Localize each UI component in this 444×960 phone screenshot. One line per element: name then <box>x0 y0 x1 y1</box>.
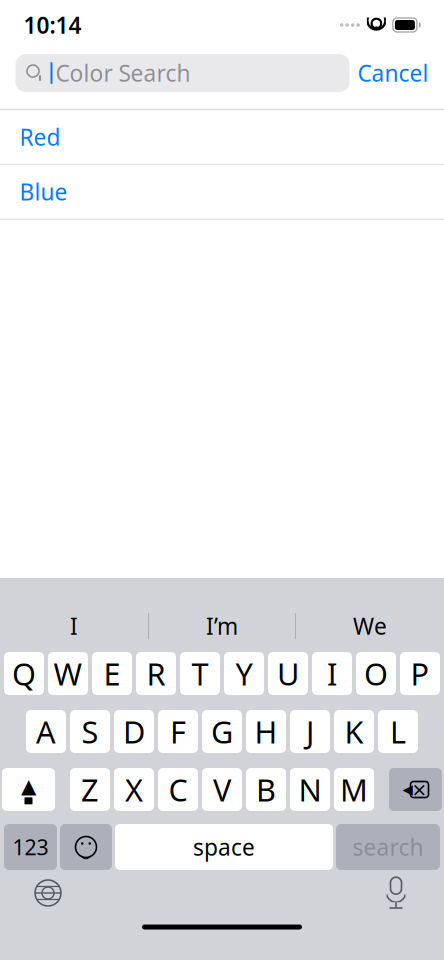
button[interactable]: P <box>400 652 440 695</box>
staticText: A <box>36 711 56 752</box>
button[interactable]: X <box>114 768 154 811</box>
button[interactable]: U <box>268 652 308 695</box>
staticText: C <box>168 769 187 810</box>
staticText: W <box>53 653 82 694</box>
staticText: B <box>256 769 276 810</box>
button[interactable]: F <box>158 710 198 753</box>
staticText: 10:14 <box>23 10 81 40</box>
button[interactable]: N <box>290 768 330 811</box>
staticText: U <box>277 653 299 694</box>
button[interactable]: Delete <box>389 768 442 811</box>
staticText: space <box>193 832 255 862</box>
button[interactable]: Next keyboard <box>26 871 70 915</box>
staticText: ▲ <box>21 775 36 797</box>
button[interactable]: M <box>334 768 374 811</box>
button[interactable]: I <box>312 652 352 695</box>
staticText: K <box>344 711 363 752</box>
button[interactable]: I <box>0 604 148 648</box>
staticText: G <box>211 711 233 752</box>
button[interactable]: G <box>202 710 242 753</box>
button[interactable]: A <box>26 710 66 753</box>
staticText: L <box>390 711 406 752</box>
staticText: M <box>340 769 368 810</box>
button[interactable]: K <box>334 710 374 753</box>
button[interactable]: O <box>356 652 396 695</box>
staticText: F <box>170 711 186 752</box>
button[interactable]: I’m <box>149 604 295 648</box>
staticText: Y <box>235 653 252 694</box>
button[interactable]: Dictate <box>374 871 418 915</box>
staticText: T <box>191 653 208 694</box>
staticText: Q <box>12 653 36 694</box>
button[interactable]: R <box>136 652 176 695</box>
button[interactable]: W <box>48 652 88 695</box>
button[interactable]: Shift <box>2 768 55 811</box>
button[interactable]: Emoji <box>60 824 112 870</box>
button[interactable]: C <box>158 768 198 811</box>
button[interactable]: Blue <box>0 165 444 219</box>
button[interactable]: Red <box>0 110 444 165</box>
staticText: Cancel <box>357 58 428 88</box>
button[interactable]: Q <box>4 652 44 695</box>
staticText: I <box>70 611 78 641</box>
button[interactable]: E <box>92 652 132 695</box>
staticText: We <box>353 611 387 641</box>
button[interactable]: T <box>180 652 220 695</box>
staticText: search <box>352 832 423 862</box>
button[interactable]: We <box>296 604 444 648</box>
staticText: ◀ <box>402 782 412 797</box>
button[interactable]: J <box>290 710 330 753</box>
staticText: O <box>364 653 388 694</box>
staticText: Z <box>81 769 99 810</box>
staticText: I’m <box>206 611 238 641</box>
staticText: V <box>213 769 231 810</box>
staticText: X <box>125 769 143 810</box>
button[interactable]: search <box>336 824 440 870</box>
staticText: D <box>123 711 145 752</box>
button[interactable]: Y <box>224 652 264 695</box>
button[interactable]: Z <box>70 768 110 811</box>
staticText: I <box>327 653 337 694</box>
staticText: ⨯ <box>411 779 427 800</box>
button[interactable]: H <box>246 710 286 753</box>
staticText: Blue <box>19 177 67 207</box>
button[interactable]: space <box>115 824 333 870</box>
staticText: N <box>298 769 321 810</box>
staticText: Red <box>19 122 60 152</box>
button[interactable]: B <box>246 768 286 811</box>
button[interactable]: L <box>378 710 418 753</box>
button[interactable]: 123 <box>4 824 57 870</box>
button[interactable]: Cancel <box>349 50 436 96</box>
button[interactable]: S <box>70 710 110 753</box>
button[interactable]: D <box>114 710 154 753</box>
staticText: S <box>81 711 98 752</box>
staticText: H <box>254 711 277 752</box>
staticText: 123 <box>12 833 48 861</box>
staticText: Color Search <box>55 58 190 88</box>
staticText: ‿ <box>80 837 91 860</box>
staticText: J <box>306 711 314 752</box>
staticText: E <box>103 653 120 694</box>
staticText: R <box>146 653 165 694</box>
button[interactable]: V <box>202 768 242 811</box>
staticText: P <box>410 653 429 694</box>
